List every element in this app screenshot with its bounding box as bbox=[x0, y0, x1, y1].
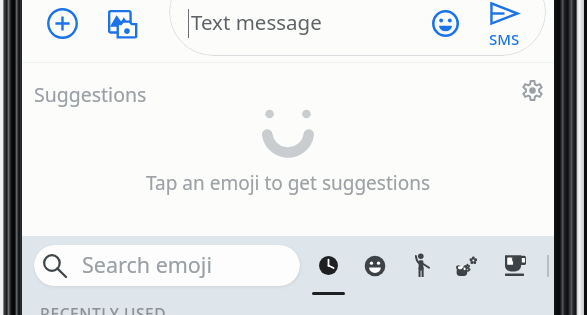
button[interactable]: Search emoji bbox=[34, 245, 300, 286]
button[interactable]: Animals and nature bbox=[444, 236, 490, 296]
staticText: Search emoji bbox=[82, 250, 212, 279]
button[interactable]: Suggestion settings bbox=[513, 71, 551, 109]
button[interactable]: Text message bbox=[169, 0, 546, 56]
staticText: Tap an emoji to get suggestions bbox=[21, 170, 555, 196]
button[interactable]: Recent bbox=[305, 236, 351, 296]
button[interactable]: Send a picture bbox=[101, 2, 143, 44]
staticText: Suggestions bbox=[34, 81, 147, 108]
button[interactable]: People and body bbox=[398, 236, 444, 296]
staticText: Text message bbox=[191, 8, 322, 36]
button[interactable]: Send SMS message bbox=[484, 0, 536, 52]
button[interactable]: Smileys and emotion bbox=[352, 236, 398, 296]
button[interactable]: Add attachment bbox=[40, 1, 84, 45]
staticText: SMS bbox=[489, 29, 520, 49]
button[interactable]: Choose an emoji bbox=[426, 4, 464, 42]
staticText: RECENTLY USED bbox=[40, 303, 167, 315]
button[interactable]: Food and drink bbox=[492, 236, 538, 296]
